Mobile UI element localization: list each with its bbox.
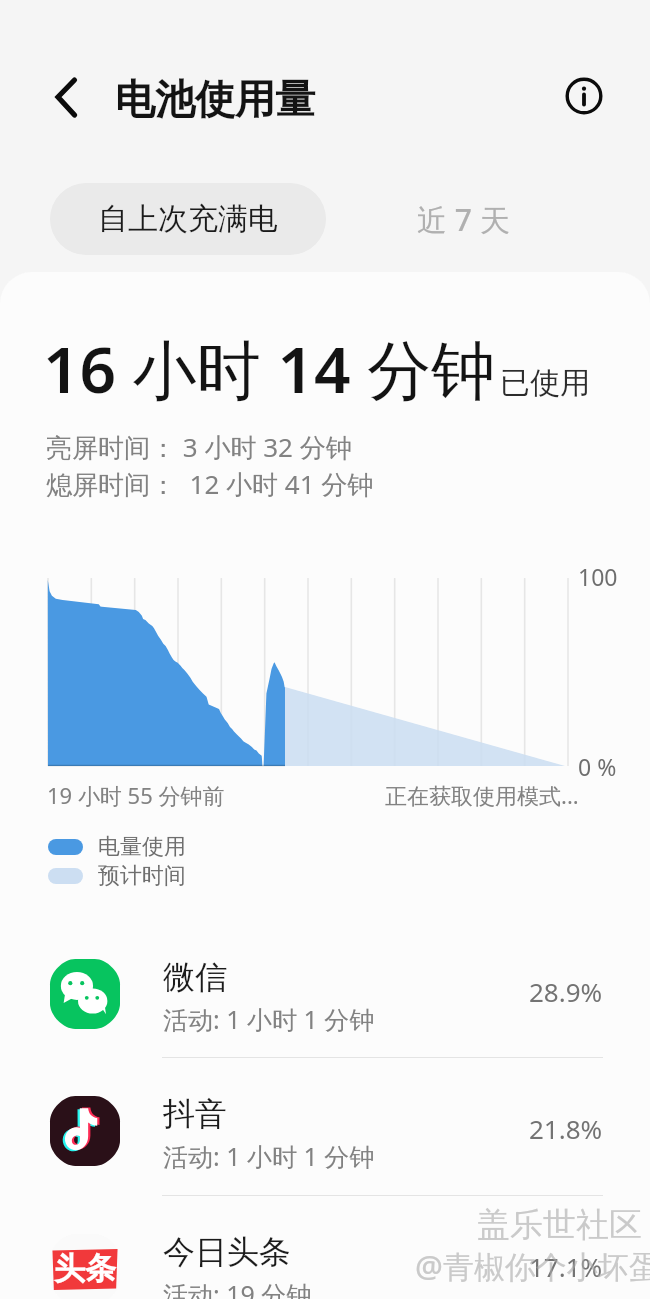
staticText: 活动: 1 小时 1 分钟 [163, 1002, 375, 1036]
staticText: @青椒你个小坏蛋 [415, 1245, 650, 1287]
staticText: 0 % [578, 751, 617, 782]
staticText: 电量使用 [98, 833, 186, 861]
button[interactable]: Information [549, 61, 619, 131]
staticText: 盖乐世社区 [477, 1204, 642, 1246]
staticText: 活动: 19 分钟 [163, 1277, 312, 1299]
staticText: 亮屏时间： 3 小时 32 分钟 [46, 429, 352, 465]
staticText: 电池使用量 [115, 74, 315, 124]
staticText: 16 小时 14 分钟 [43, 325, 496, 412]
button[interactable]: 自上次充满电 [50, 183, 326, 255]
staticText: 自上次充满电 [98, 200, 278, 238]
staticText: 今日头条 [163, 1232, 291, 1272]
staticText: 活动: 1 小时 1 分钟 [163, 1139, 375, 1173]
staticText: 100 [578, 561, 618, 592]
staticText: 熄屏时间： 12 小时 41 分钟 [46, 466, 374, 502]
staticText: 微信 [163, 957, 227, 997]
staticText: 19 小时 55 分钟前 [47, 780, 225, 810]
staticText: 28.9% [529, 974, 603, 1009]
button[interactable]: 抖音 [0, 1061, 650, 1199]
staticText: 头条 [54, 1249, 116, 1288]
staticText: 近 7 天 [417, 199, 510, 240]
button[interactable]: Back [38, 62, 108, 132]
button[interactable]: 头条 [0, 1199, 650, 1299]
button[interactable]: 微信 [0, 924, 650, 1062]
staticText: 预计时间 [98, 862, 186, 890]
staticText: 抖音 [163, 1094, 227, 1134]
button[interactable]: 近 7 天 [365, 183, 561, 255]
staticText: 已使用 [500, 364, 590, 402]
staticText: 17.1% [529, 1249, 603, 1284]
staticText: 21.8% [529, 1111, 603, 1146]
staticText: 正在获取使用模式... [385, 780, 579, 810]
